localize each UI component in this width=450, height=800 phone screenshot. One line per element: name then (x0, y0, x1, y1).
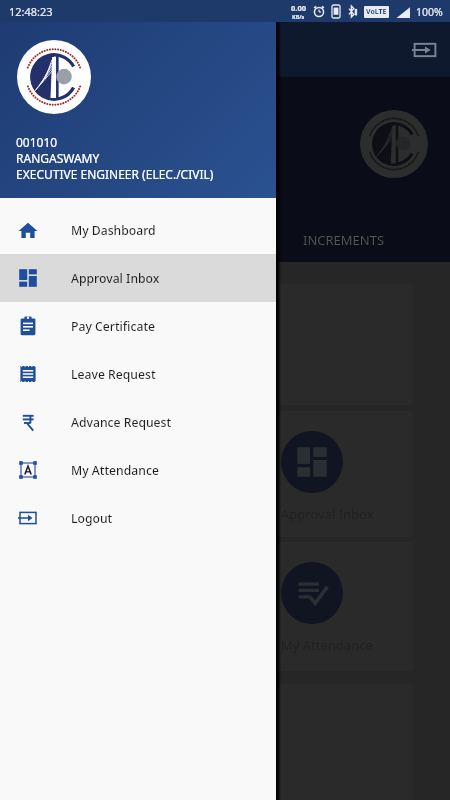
staticText: Advance Request (71, 414, 172, 431)
staticText: EXECUTIVE ENGINEER (ELEC./CIVIL) (16, 166, 214, 182)
staticText: My Attendance (281, 636, 373, 654)
staticText: Pay Certificate (71, 318, 156, 335)
staticText: 100% (416, 5, 443, 19)
button[interactable]: Approval Inbox (272, 411, 413, 537)
staticText: 001010 (16, 134, 58, 150)
button[interactable]: Logout (412, 39, 438, 61)
staticText: My Dashboard (71, 222, 156, 239)
button[interactable]: Advance Request (0, 398, 276, 446)
staticText: VoLTE (366, 7, 387, 17)
button[interactable]: Logout (0, 494, 276, 542)
button[interactable]: Approval Inbox (0, 254, 276, 302)
button[interactable] (272, 284, 413, 405)
button[interactable]: My Dashboard (0, 206, 276, 254)
staticText: 0.00 (291, 3, 306, 13)
staticText: My Attendance (71, 462, 159, 479)
staticText: Logout (71, 510, 113, 527)
button[interactable]: Leave Request (0, 350, 276, 398)
staticText: Approval Inbox (71, 270, 160, 287)
button[interactable] (272, 684, 413, 800)
staticText: Leave Request (71, 366, 156, 383)
staticText: Approval Inbox (281, 505, 374, 523)
staticText: INCREMENTS (303, 231, 385, 249)
button[interactable]: My Attendance (272, 542, 413, 671)
button[interactable]: Pay Certificate (0, 302, 276, 350)
staticText: KB/s (292, 13, 305, 20)
staticText: 12:48:23 (9, 4, 53, 19)
button[interactable]: My Attendance (0, 446, 276, 494)
staticText: RANGASWAMY (16, 150, 100, 166)
